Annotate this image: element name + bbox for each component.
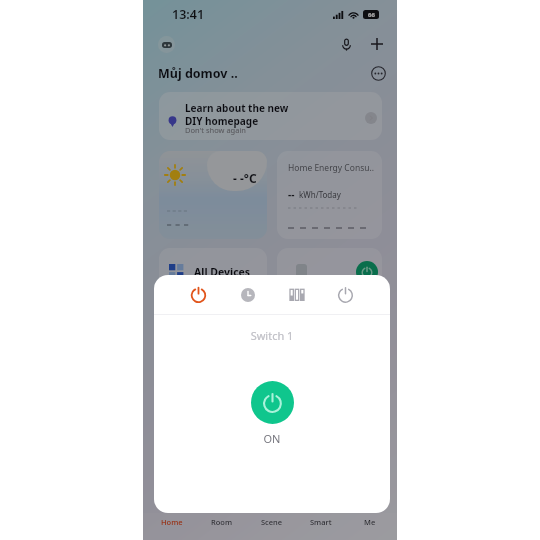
staticText: Můj domov .. [158, 65, 238, 82]
staticText: Switch 1 [154, 328, 390, 343]
button[interactable]: Assistant [158, 36, 175, 53]
button[interactable]: Scene [247, 513, 296, 531]
button[interactable]: Room [197, 513, 247, 531]
staticText: Room [211, 517, 233, 527]
button[interactable]: Voice [336, 34, 356, 54]
button[interactable]: Home [147, 513, 197, 531]
button[interactable]: All Devices [159, 248, 267, 294]
staticText: -- [288, 187, 295, 201]
staticText: Me [364, 517, 376, 527]
button[interactable]: - -°C [159, 151, 267, 239]
staticText: Don't show again [185, 125, 246, 135]
staticText: DIY homepage [185, 114, 259, 128]
button[interactable]: Switch [174, 275, 223, 314]
staticText: All Devices [194, 265, 251, 279]
staticText: 13:41 [172, 6, 205, 23]
staticText: Home Energy Consu... [288, 162, 374, 174]
button[interactable]: More options [369, 64, 387, 82]
staticText: 66 [368, 11, 375, 19]
button[interactable]: Power [321, 275, 370, 314]
button[interactable]: Toggle device [356, 261, 378, 283]
button[interactable]: Settings [272, 275, 321, 314]
button[interactable]: Home Energy Consu... [277, 151, 382, 239]
staticText: Scene [261, 517, 283, 527]
staticText: ON [154, 431, 390, 446]
button[interactable]: Learn about the new [159, 92, 382, 140]
staticText: - -°C [233, 170, 257, 186]
staticText: kWh/Today [299, 189, 341, 200]
button[interactable]: Timer [223, 275, 272, 314]
button[interactable]: Me [345, 513, 394, 531]
staticText: Home [161, 517, 183, 527]
staticText: Smart [310, 517, 332, 527]
button[interactable]: Toggle device [277, 248, 382, 294]
staticText: Learn about the new [185, 101, 289, 115]
button[interactable]: Toggle power [251, 381, 294, 424]
button[interactable]: Smart [296, 513, 345, 531]
button[interactable]: Add [367, 34, 387, 54]
